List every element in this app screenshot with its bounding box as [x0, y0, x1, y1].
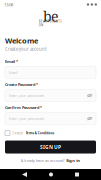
button[interactable]: I accept [5, 130, 96, 135]
staticText: 13:08 [4, 2, 13, 7]
staticText: be [43, 7, 58, 26]
staticText: Terms & Conditions [26, 131, 54, 135]
staticText: Enter your password [8, 93, 43, 98]
staticText: BEAUTIFICATION [39, 19, 62, 27]
button[interactable]: Home [49, 172, 53, 176]
staticText: Create Password * [5, 82, 38, 87]
staticText: Sign in [66, 158, 80, 163]
staticText: Welcome [5, 35, 38, 46]
staticText: SIGN UP [40, 144, 61, 150]
button[interactable]: Sign in [66, 158, 80, 163]
button[interactable]: Recent apps [75, 172, 79, 176]
button[interactable]: SIGN UP [5, 140, 96, 153]
staticText: Confirm Password * [5, 105, 42, 110]
staticText: Already have an account? [21, 158, 65, 163]
staticText: I accept [12, 131, 23, 135]
button[interactable]: Back [22, 172, 27, 177]
staticText: Email * [5, 59, 18, 64]
staticText: Enter your password [8, 116, 43, 121]
staticText: Create your account [5, 46, 47, 52]
staticText: Email [8, 70, 17, 75]
